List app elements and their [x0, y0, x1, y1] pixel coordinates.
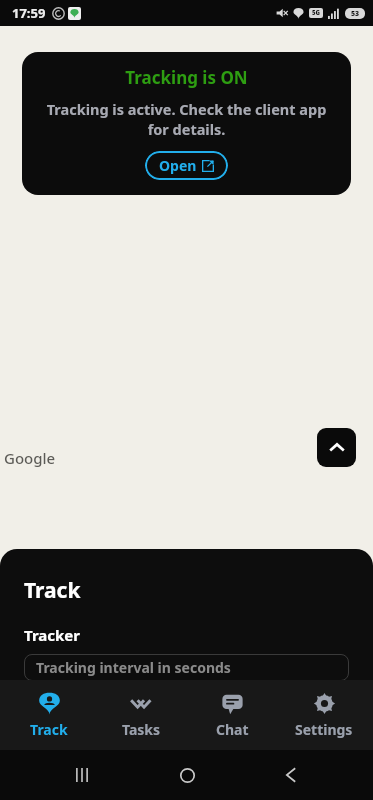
button[interactable]: Back	[271, 755, 311, 795]
staticText: Tracking is active. Check the client app…	[36, 99, 337, 140]
button[interactable]: Track	[7, 680, 91, 750]
button[interactable]: Open	[145, 151, 228, 180]
staticText: 17:59	[12, 4, 46, 22]
staticText: Track	[24, 576, 81, 605]
staticText: Tracking interval in seconds	[36, 658, 231, 677]
staticText: 5G	[312, 9, 320, 17]
staticText: Settings	[295, 720, 353, 739]
button[interactable]: Home	[167, 755, 207, 795]
staticText: Tracker	[24, 625, 80, 645]
button[interactable]: Tasks	[99, 680, 183, 750]
staticText: Track	[30, 720, 68, 739]
staticText: Google	[4, 448, 56, 468]
button[interactable]: Tracking interval in seconds	[24, 654, 349, 681]
button[interactable]: Chat	[190, 680, 274, 750]
staticText: Chat	[216, 720, 249, 739]
staticText: 53	[351, 9, 360, 19]
button[interactable]: Settings	[282, 680, 366, 750]
staticText: Tasks	[122, 720, 161, 739]
staticText: Tracking is ON	[125, 66, 248, 89]
button[interactable]: Recent apps	[62, 755, 102, 795]
button[interactable]: Recenter map	[317, 428, 356, 467]
staticText: Open	[159, 156, 197, 175]
